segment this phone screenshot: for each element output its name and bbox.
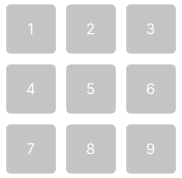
staticText: 4 bbox=[26, 80, 35, 98]
button[interactable]: 1 bbox=[6, 4, 56, 54]
button[interactable]: 8 bbox=[66, 124, 116, 174]
staticText: 1 bbox=[27, 20, 33, 38]
staticText: 5 bbox=[86, 80, 95, 98]
button[interactable]: 4 bbox=[6, 64, 56, 114]
button[interactable]: 2 bbox=[66, 4, 116, 54]
button[interactable]: 9 bbox=[126, 124, 176, 174]
button[interactable]: 7 bbox=[6, 124, 56, 174]
button[interactable]: 3 bbox=[126, 4, 176, 54]
staticText: 9 bbox=[146, 140, 155, 158]
staticText: 8 bbox=[86, 140, 95, 158]
button[interactable]: 6 bbox=[126, 64, 176, 114]
staticText: 3 bbox=[146, 20, 155, 38]
staticText: 2 bbox=[86, 20, 95, 38]
staticText: 6 bbox=[146, 80, 155, 98]
button[interactable]: 5 bbox=[66, 64, 116, 114]
staticText: 7 bbox=[26, 140, 34, 158]
